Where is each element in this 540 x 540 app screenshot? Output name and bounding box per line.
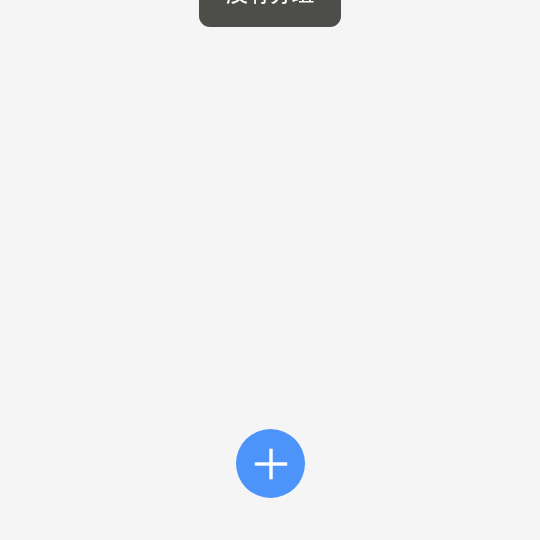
- staticText: 没有分组: [226, 0, 314, 8]
- button[interactable]: Add group: [236, 429, 305, 498]
